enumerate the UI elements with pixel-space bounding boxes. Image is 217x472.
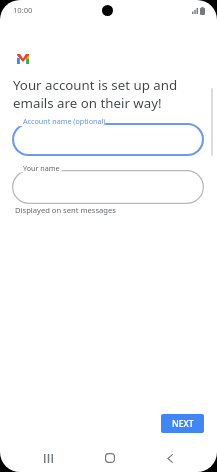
staticText: Displayed on sent messages bbox=[15, 205, 116, 215]
staticText: Account name (optional) bbox=[23, 116, 106, 126]
button[interactable]: NEXT bbox=[161, 414, 204, 433]
staticText: Your account is set up and emails are on… bbox=[13, 76, 178, 112]
button[interactable]: Your name bbox=[12, 170, 204, 204]
staticText: Your name bbox=[23, 163, 60, 173]
staticText: 10:00 bbox=[13, 5, 33, 15]
button[interactable]: Recent apps bbox=[33, 443, 63, 472]
button[interactable]: Home bbox=[95, 443, 125, 472]
staticText: NEXT bbox=[172, 418, 194, 430]
button[interactable]: Account name (optional) bbox=[12, 123, 204, 156]
button[interactable]: Back bbox=[155, 443, 185, 472]
